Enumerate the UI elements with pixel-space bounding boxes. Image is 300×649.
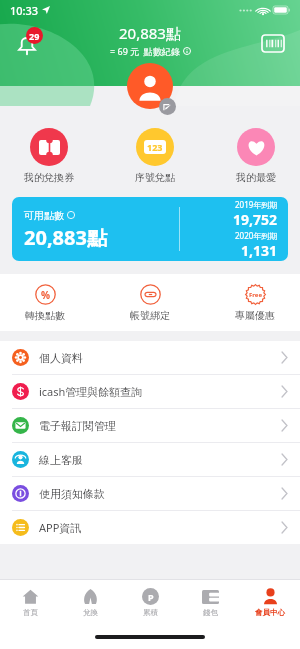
staticText: icash管理與餘額查詢 [39,384,281,399]
staticText: 累積 [143,608,158,617]
button[interactable]: 我的最愛 [234,126,278,186]
staticText: 2020年到期 [235,230,278,241]
staticText: 專屬優惠 [235,309,275,322]
button[interactable]: 我的兌換券 [22,126,76,186]
staticText: 20,883點 [119,23,181,43]
staticText: 10:33 [10,3,39,18]
staticText: 123 [147,141,163,153]
button[interactable]: 錢包 [180,580,240,624]
staticText: 帳號綁定 [130,309,170,322]
button[interactable]: 線上客服 [0,443,300,476]
staticText: 29 [29,30,40,42]
button[interactable]: 兌換 [60,580,120,624]
staticText: 兌換 [83,608,98,617]
button[interactable]: 電子報訂閱管理 [0,409,300,442]
staticText: Free [249,291,263,299]
staticText: 會員中心 [255,608,285,617]
staticText: P [148,591,154,603]
staticText: 可用點數 [24,208,67,222]
button[interactable]: 123 [133,126,177,186]
staticText: % [41,288,51,302]
staticText: 我的最愛 [236,171,276,184]
staticText: 1,131 [241,241,278,260]
staticText: 19,752 [233,210,278,229]
button[interactable]: 個人資料 [0,341,300,374]
staticText: 個人資料 [39,351,281,365]
staticText: 2019年到期 [235,199,278,210]
button[interactable]: Free [234,282,276,323]
staticText: 錢包 [203,608,218,617]
staticText: 線上客服 [39,453,281,467]
button[interactable]: APP資訊 [0,511,300,544]
button[interactable]: Notifications [4,20,50,66]
staticText: 使用須知條款 [39,487,281,501]
staticText: 電子報訂閱管理 [39,419,281,433]
button[interactable]: % [24,282,66,323]
button[interactable]: Profile avatar [124,63,176,115]
staticText: 序號兌點 [135,171,175,184]
staticText: APP資訊 [39,520,281,535]
button[interactable]: 使用須知條款 [0,477,300,510]
staticText: 我的兌換券 [24,171,74,184]
button[interactable]: P [120,580,180,624]
staticText: 20,883點 [24,224,107,251]
button[interactable]: icash管理與餘額查詢 [0,375,300,408]
button[interactable]: 會員中心 [240,580,300,624]
button[interactable]: 可用點數 [12,197,288,261]
button[interactable]: 帳號綁定 [129,282,171,323]
staticText: 首頁 [23,608,38,617]
staticText: 轉換點數 [25,309,65,322]
button[interactable]: 首頁 [0,580,60,624]
staticText: = 69 元 點數紀錄 [110,45,183,57]
button[interactable]: Barcode [250,20,296,66]
